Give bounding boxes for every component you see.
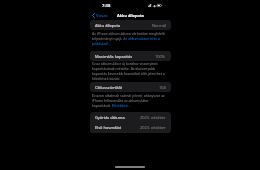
- staticText: Ez az akkumulátor új korához viszonyítot…: [92, 61, 168, 81]
- other: Back: [92, 13, 95, 18]
- button[interactable]: Maximális kapacitás: [95, 51, 166, 61]
- button[interactable]: Gyártás dátuma: [95, 112, 166, 122]
- staticText: Első használat: [95, 125, 122, 130]
- staticText: Ciklusszámláló: [95, 85, 123, 90]
- button[interactable]: Akku állapota: [95, 20, 166, 30]
- staticText: 2023. október: [140, 125, 166, 130]
- staticText: 100%: [155, 54, 166, 59]
- staticText: Akku állapota: [117, 13, 144, 18]
- button[interactable]: Első használat: [95, 122, 166, 132]
- staticText: Akku állapota: [95, 23, 121, 28]
- button[interactable]: Ciklusszámláló: [95, 82, 166, 92]
- staticText: Maximális kapacitás: [95, 54, 133, 59]
- staticText: 7:38: [102, 3, 111, 9]
- staticText: Gyártás dátuma: [95, 115, 125, 120]
- staticText: Ez azon alkalmak számát jelenti, ahánysz…: [92, 93, 168, 108]
- staticText: 2023. október: [140, 115, 166, 120]
- staticText: Az iPhone akkumulátora várhatóan megfele…: [92, 31, 168, 46]
- staticText: Normál: [152, 23, 166, 28]
- staticText: 104: [159, 85, 166, 90]
- button[interactable]: Back: [92, 13, 108, 18]
- staticText: Vissza: [96, 13, 108, 18]
